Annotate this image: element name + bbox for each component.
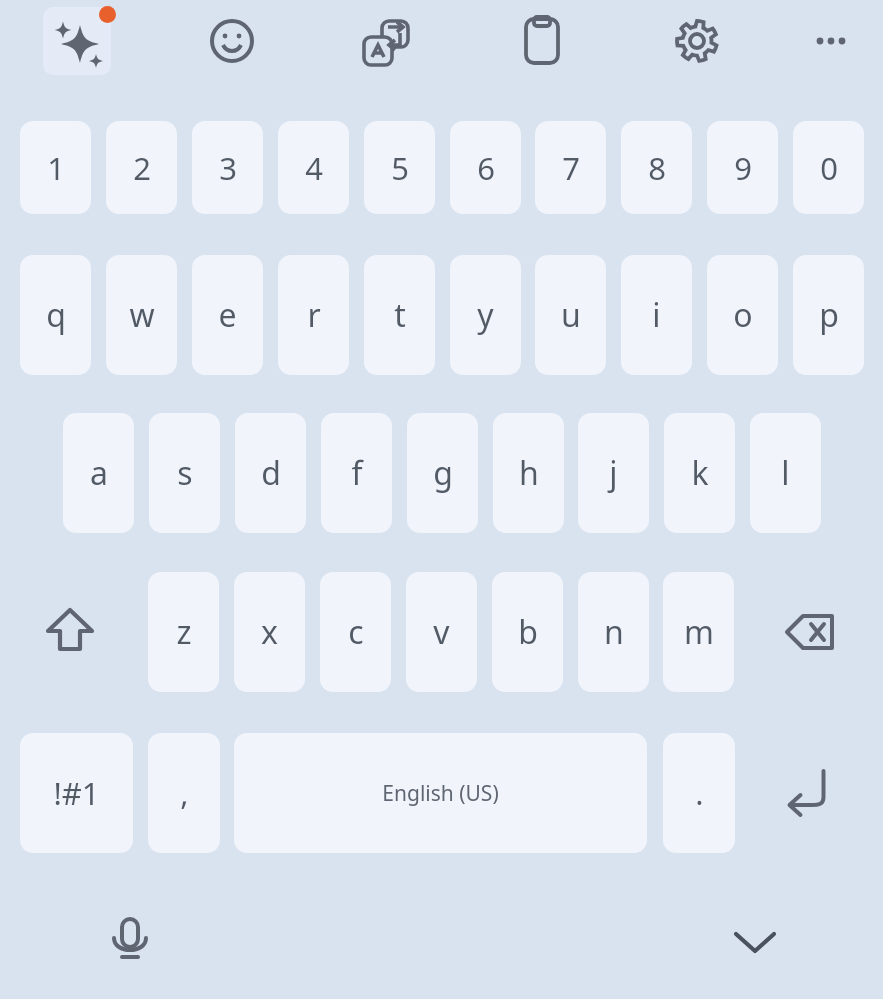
staticText: j	[609, 451, 618, 495]
button[interactable]: n	[578, 572, 649, 692]
button[interactable]: ,	[148, 733, 220, 853]
button[interactable]: Settings	[663, 7, 731, 75]
button[interactable]: o	[707, 255, 778, 375]
staticText: f	[351, 451, 363, 495]
staticText: l	[781, 451, 790, 495]
button[interactable]: 9	[707, 121, 778, 214]
button[interactable]: Clipboard	[508, 7, 576, 75]
button[interactable]: g	[407, 413, 478, 533]
button[interactable]: y	[450, 255, 521, 375]
staticText: x	[261, 610, 278, 654]
button[interactable]: Enter	[750, 733, 863, 853]
staticText: y	[477, 293, 494, 337]
button[interactable]: v	[406, 572, 477, 692]
button[interactable]: Shift	[20, 572, 120, 692]
staticText: English (US)	[382, 779, 499, 808]
button[interactable]: p	[793, 255, 864, 375]
button[interactable]: Translate	[352, 7, 420, 75]
staticText: m	[684, 610, 714, 654]
staticText: n	[604, 610, 624, 654]
button[interactable]: .	[663, 733, 735, 853]
staticText: v	[433, 610, 450, 654]
button[interactable]: f	[321, 413, 392, 533]
button[interactable]: k	[664, 413, 735, 533]
staticText: p	[819, 293, 839, 337]
button[interactable]: Backspace	[763, 572, 863, 692]
button[interactable]: u	[535, 255, 606, 375]
button[interactable]: s	[149, 413, 220, 533]
button[interactable]: x	[234, 572, 305, 692]
staticText: u	[561, 293, 581, 337]
staticText: !#1	[53, 772, 100, 814]
button[interactable]: Emoji	[198, 7, 266, 75]
staticText: 0	[820, 147, 838, 189]
button[interactable]: Voice input	[96, 907, 164, 975]
button[interactable]: 4	[278, 121, 349, 214]
staticText: 5	[391, 147, 409, 189]
staticText: t	[394, 293, 406, 337]
button[interactable]: q	[20, 255, 91, 375]
button[interactable]: 7	[535, 121, 606, 214]
button[interactable]: h	[493, 413, 564, 533]
button[interactable]: 3	[192, 121, 263, 214]
button[interactable]: 8	[621, 121, 692, 214]
button[interactable]: m	[663, 572, 734, 692]
staticText: 9	[734, 147, 752, 189]
staticText: r	[307, 293, 321, 337]
staticText: i	[652, 293, 661, 337]
button[interactable]: r	[278, 255, 349, 375]
staticText: 4	[305, 147, 323, 189]
button[interactable]: a	[63, 413, 134, 533]
button[interactable]: l	[750, 413, 821, 533]
staticText: g	[433, 451, 453, 495]
button[interactable]: AI writing tools	[43, 7, 111, 75]
staticText: 3	[219, 147, 237, 189]
staticText: .	[695, 772, 704, 814]
button[interactable]: 1	[20, 121, 91, 214]
button[interactable]: c	[320, 572, 391, 692]
button[interactable]: English (US)	[234, 733, 647, 853]
button[interactable]: Hide keyboard	[721, 908, 789, 976]
staticText: e	[218, 293, 237, 337]
staticText: 1	[47, 147, 65, 189]
button[interactable]: w	[106, 255, 177, 375]
button[interactable]: j	[578, 413, 649, 533]
staticText: 6	[477, 147, 495, 189]
staticText: o	[733, 293, 753, 337]
button[interactable]: !#1	[20, 733, 133, 853]
button[interactable]: i	[621, 255, 692, 375]
staticText: 7	[562, 147, 580, 189]
staticText: s	[177, 451, 193, 495]
button[interactable]: z	[148, 572, 219, 692]
button[interactable]: 6	[450, 121, 521, 214]
staticText: 2	[133, 147, 151, 189]
button[interactable]: More options	[797, 7, 865, 75]
staticText: 8	[648, 147, 666, 189]
staticText: a	[90, 451, 108, 495]
staticText: b	[518, 610, 538, 654]
staticText: q	[46, 293, 66, 337]
staticText: k	[691, 451, 709, 495]
staticText: z	[176, 610, 192, 654]
button[interactable]: 5	[364, 121, 435, 214]
button[interactable]: 2	[106, 121, 177, 214]
button[interactable]: t	[364, 255, 435, 375]
button[interactable]: 0	[793, 121, 864, 214]
staticText: h	[519, 451, 539, 495]
button[interactable]: d	[235, 413, 306, 533]
staticText: w	[129, 293, 155, 337]
staticText: c	[348, 610, 364, 654]
staticText: d	[261, 451, 281, 495]
staticText: ,	[180, 772, 189, 814]
button[interactable]: b	[492, 572, 563, 692]
button[interactable]: e	[192, 255, 263, 375]
